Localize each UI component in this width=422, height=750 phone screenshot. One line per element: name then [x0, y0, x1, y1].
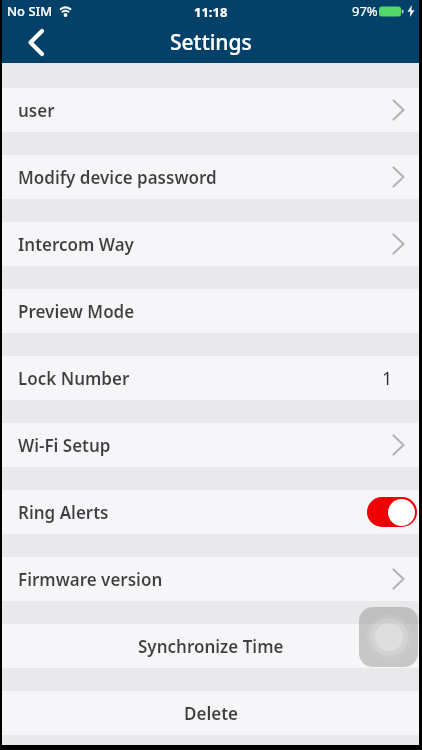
staticText: 11:18 — [194, 3, 228, 21]
staticText: Firmware version — [18, 568, 163, 591]
staticText: Modify device password — [18, 166, 217, 189]
button[interactable]: Wi-Fi Setup — [2, 423, 419, 467]
button[interactable]: Lock Number — [2, 356, 419, 400]
staticText: user — [18, 99, 55, 122]
staticText: 1 — [382, 366, 393, 391]
button[interactable]: Firmware version — [2, 557, 419, 601]
button[interactable]: Intercom Way — [2, 222, 419, 266]
staticText: No SIM — [7, 2, 53, 20]
staticText: Ring Alerts — [18, 501, 109, 524]
button[interactable]: Delete — [2, 691, 419, 735]
staticText: Settings — [170, 28, 252, 57]
button[interactable] — [367, 497, 417, 527]
staticText: Synchronize Time — [138, 635, 284, 658]
button[interactable] — [359, 607, 418, 667]
button[interactable]: Ring Alerts — [2, 490, 419, 534]
staticText: Intercom Way — [18, 233, 134, 256]
staticText: Wi-Fi Setup — [18, 434, 111, 457]
staticText: 97% — [352, 2, 378, 20]
button[interactable]: user — [2, 88, 419, 132]
staticText: Lock Number — [18, 367, 130, 390]
staticText: Preview Mode — [18, 300, 135, 323]
button[interactable]: Preview Mode — [2, 289, 419, 333]
button[interactable] — [28, 24, 64, 60]
button[interactable]: Synchronize Time — [2, 624, 419, 668]
staticText: Delete — [184, 702, 238, 725]
button[interactable]: Modify device password — [2, 155, 419, 199]
